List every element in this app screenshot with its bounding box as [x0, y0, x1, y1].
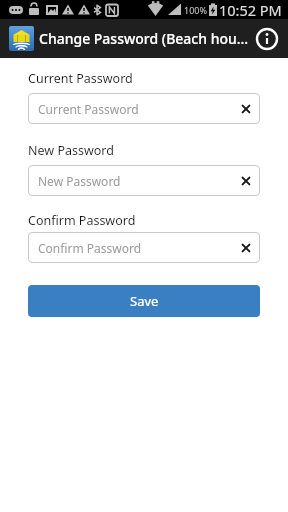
staticText: New Password — [28, 142, 114, 157]
staticText: Current Password — [28, 70, 133, 85]
button[interactable]: Confirm Password — [28, 232, 260, 263]
staticText: 10:52 PM — [219, 0, 282, 19]
button[interactable]: New Password — [28, 165, 260, 196]
staticText: Change Password (Beach hou... — [39, 29, 254, 48]
staticText: 100% — [184, 4, 207, 16]
staticText: Confirm Password — [38, 240, 142, 256]
button[interactable]: Current Password — [28, 93, 260, 124]
staticText: Current Password — [38, 101, 139, 117]
button[interactable]: Save — [28, 285, 260, 317]
staticText: Save — [130, 292, 159, 310]
staticText: Confirm Password — [28, 212, 136, 227]
staticText: New Password — [38, 173, 121, 189]
button[interactable] — [254, 26, 280, 52]
